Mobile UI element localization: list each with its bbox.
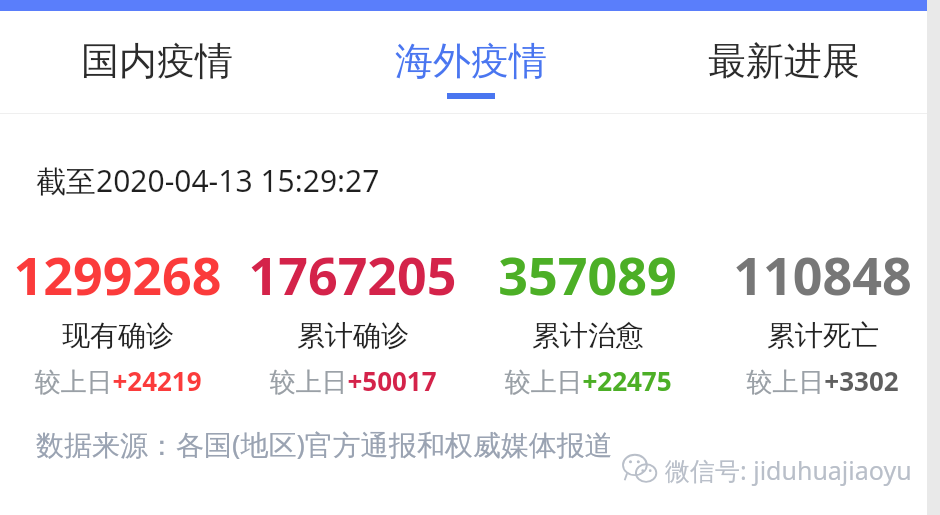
staticText: 较上日+3302 (746, 363, 899, 399)
staticText: 数据来源：各国(地区)官方通报和权威媒体报道 (36, 425, 613, 463)
staticText: 1299268 (13, 239, 222, 310)
staticText: 微信号: jiduhuajiaoyu (665, 453, 912, 487)
staticText: 最新进展 (708, 37, 860, 85)
staticText: 110848 (733, 239, 912, 310)
staticText: 现有确诊 (62, 318, 174, 353)
staticText: 较上日+22475 (504, 363, 672, 399)
other: WeChat (623, 453, 657, 487)
button[interactable]: 海外疫情 (314, 11, 627, 113)
staticText: 较上日+50017 (269, 363, 437, 399)
button[interactable]: 最新进展 (627, 11, 940, 113)
staticText: 累计治愈 (532, 318, 644, 353)
staticText: 1767205 (248, 239, 457, 310)
staticText: 国内疫情 (81, 37, 233, 85)
staticText: 累计确诊 (297, 318, 409, 353)
button[interactable]: 国内疫情 (0, 11, 314, 113)
staticText: 截至2020-04-13 15:29:27 (36, 160, 380, 201)
staticText: 357089 (498, 239, 677, 310)
staticText: 海外疫情 (395, 37, 547, 85)
staticText: 较上日+24219 (34, 363, 202, 399)
staticText: 累计死亡 (767, 318, 879, 353)
